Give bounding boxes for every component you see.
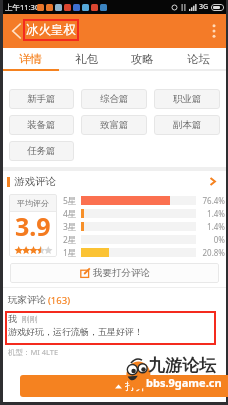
staticText: 我要打分评论 [93,267,150,279]
staticText: 论坛 [187,52,210,66]
button[interactable]: 装备篇 [9,115,74,135]
staticText: 3.9 [15,209,51,243]
staticText: 我 [8,313,17,324]
button[interactable]: 我要打分评论 [10,263,219,283]
staticText: 4星 [63,208,77,220]
button[interactable]: 职业篇 [154,89,220,109]
staticText: 打开 [125,379,147,393]
staticText: 2星 [63,234,77,246]
button[interactable]: 详情 [3,48,58,69]
staticText: 礼包 [75,52,98,66]
button[interactable]: Back [3,14,26,48]
button[interactable]: 新手篇 [9,89,74,109]
staticText: 新手篇 [27,93,56,105]
staticText: 冰火皇权 [26,22,76,38]
staticText: 玩家评论 [8,294,46,306]
staticText: 平均评分 [17,198,49,208]
staticText: (163) [48,294,71,307]
staticText: 1.4% [199,221,225,232]
staticText: 九游论坛 [148,355,216,376]
staticText: 刚刚 [22,314,38,324]
staticText: 76.4% [199,195,225,206]
staticText: bbs.9game.cn [146,375,222,390]
staticText: 综合篇 [100,93,129,105]
staticText: 3星 [63,221,77,233]
staticText: 上午11:30 [5,2,40,12]
staticText: 20.8% [199,247,225,258]
button[interactable]: 论坛 [170,48,226,69]
button[interactable]: 游戏评论 [3,171,226,191]
button[interactable]: 攻略 [114,48,170,69]
button[interactable]: 副本篇 [154,115,220,135]
button[interactable]: More options [202,14,226,48]
staticText: 游戏好玩，运行流畅，五星好评！ [8,326,143,337]
staticText: 游戏评论 [14,175,56,188]
staticText: 任务篇 [27,145,56,157]
staticText: 致富篇 [100,119,129,131]
button[interactable]: 任务篇 [9,141,74,161]
button[interactable]: 综合篇 [81,89,147,109]
staticText: 3G [199,2,209,12]
staticText: 1.4% [199,208,225,219]
staticText: 5星 [63,195,77,207]
staticText: 攻略 [131,52,154,66]
button[interactable]: 礼包 [58,48,114,69]
staticText: 0% [199,234,225,245]
staticText: 机型：MI 4LTE [8,347,59,357]
staticText: 职业篇 [173,93,202,105]
staticText: 副本篇 [173,119,202,131]
button[interactable]: 致富篇 [81,115,147,135]
button[interactable]: 打开 [20,375,228,397]
staticText: 详情 [19,52,42,66]
staticText: 装备篇 [27,119,56,131]
staticText: 1星 [63,247,77,259]
